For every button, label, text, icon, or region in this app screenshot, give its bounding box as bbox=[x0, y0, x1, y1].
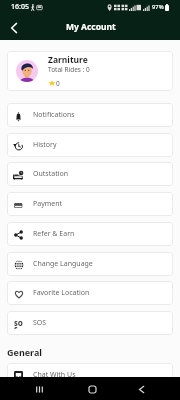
button[interactable]: Chat With Us bbox=[7, 363, 173, 387]
button[interactable]: Notifications bbox=[7, 103, 173, 127]
staticText: Favorite Location bbox=[33, 288, 90, 298]
button[interactable]: SOS bbox=[7, 311, 173, 335]
staticText: 0 bbox=[56, 79, 60, 88]
staticText: 97% bbox=[152, 3, 164, 11]
button[interactable]: History bbox=[7, 133, 173, 157]
staticText: Chat With Us bbox=[33, 370, 76, 380]
staticText: Zarniture bbox=[48, 54, 88, 66]
button[interactable]: Favorite Location bbox=[7, 281, 173, 305]
staticText: General bbox=[7, 346, 43, 358]
button[interactable]: Back bbox=[4, 18, 23, 37]
staticText: Payment bbox=[33, 199, 63, 209]
button[interactable]: Payment bbox=[7, 192, 173, 216]
staticText: Total Rides : 0 bbox=[48, 65, 90, 74]
staticText: 16:05 bbox=[11, 2, 29, 12]
staticText: Outstation bbox=[33, 169, 69, 179]
staticText: My Account bbox=[66, 21, 116, 33]
button[interactable]: Back bbox=[131, 379, 151, 399]
staticText: Change Language bbox=[33, 259, 93, 269]
staticText: SOS bbox=[33, 318, 47, 328]
button[interactable]: Recent apps bbox=[29, 379, 49, 399]
staticText: Notifications bbox=[33, 110, 75, 120]
button[interactable]: Change Language bbox=[7, 252, 173, 276]
button[interactable]: Outstation bbox=[7, 162, 173, 186]
button[interactable]: Home bbox=[82, 379, 102, 399]
staticText: SOS bbox=[14, 319, 24, 329]
button[interactable]: Zarniture bbox=[7, 51, 173, 91]
staticText: History bbox=[33, 140, 57, 150]
button[interactable]: Refer & Earn bbox=[7, 222, 173, 246]
staticText: Refer & Earn bbox=[33, 229, 75, 239]
